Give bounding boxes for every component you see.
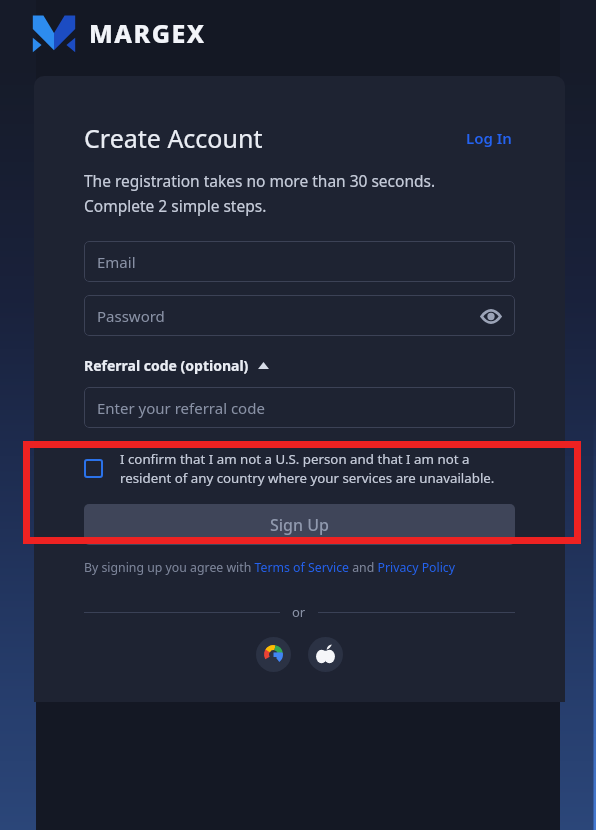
staticText: Referral code (optional) — [84, 356, 249, 375]
staticText: Enter your referral code — [97, 398, 265, 418]
staticText: Sign Up — [270, 514, 329, 536]
staticText: Log In — [466, 128, 512, 148]
button[interactable]: Password — [84, 295, 515, 336]
button[interactable]: Margex — [31, 13, 206, 53]
staticText: Password — [97, 306, 165, 326]
staticText: I confirm that I am not a U.S. person an… — [120, 450, 495, 487]
staticText: Create Account — [84, 121, 263, 155]
staticText: or — [292, 603, 306, 621]
staticText: By signing up you agree with Terms of Se… — [84, 559, 456, 576]
button[interactable]: Referral code (optional) — [84, 356, 269, 375]
staticText: The registration takes no more than 30 s… — [84, 170, 436, 216]
button[interactable]: Sign Up — [84, 504, 515, 545]
button[interactable]: Sign up with Apple — [308, 637, 343, 672]
button[interactable]: Email — [84, 241, 515, 282]
button[interactable]: Show password — [480, 305, 502, 327]
button[interactable]: Sign up with Google — [256, 637, 291, 672]
button[interactable]: Enter your referral code — [84, 387, 515, 428]
button[interactable]: Log In — [463, 125, 515, 151]
staticText: MARGEX — [89, 16, 206, 50]
button[interactable]: I confirm that I am not a U.S. person an… — [84, 450, 515, 487]
staticText: Email — [97, 252, 136, 272]
